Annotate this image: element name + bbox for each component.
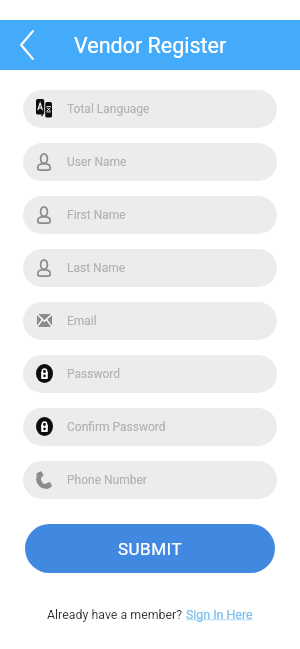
- staticText: Already have a member?: [47, 607, 186, 622]
- staticText: Total Language: [67, 102, 150, 116]
- button[interactable]: Sign In Here: [186, 607, 253, 622]
- staticText: User Name: [67, 155, 127, 169]
- button[interactable]: Email: [23, 302, 277, 340]
- button[interactable]: SUBMIT: [25, 524, 275, 573]
- staticText: Last Name: [67, 261, 126, 275]
- staticText: Confirm Password: [67, 420, 166, 434]
- button[interactable]: Confirm Password: [23, 408, 277, 446]
- staticText: Vendor Register: [74, 33, 227, 58]
- button[interactable]: Last Name: [23, 249, 277, 287]
- staticText: Phone Number: [67, 473, 147, 487]
- staticText: Email: [67, 314, 97, 328]
- button[interactable]: Phone Number: [23, 461, 277, 499]
- staticText: Sign In Here: [186, 607, 253, 622]
- staticText: SUBMIT: [118, 539, 183, 559]
- button[interactable]: Back: [6, 24, 48, 66]
- button[interactable]: Total Language: [23, 90, 277, 128]
- button[interactable]: User Name: [23, 143, 277, 181]
- button[interactable]: Password: [23, 355, 277, 393]
- staticText: First Name: [67, 208, 126, 222]
- staticText: Password: [67, 367, 121, 381]
- button[interactable]: First Name: [23, 196, 277, 234]
